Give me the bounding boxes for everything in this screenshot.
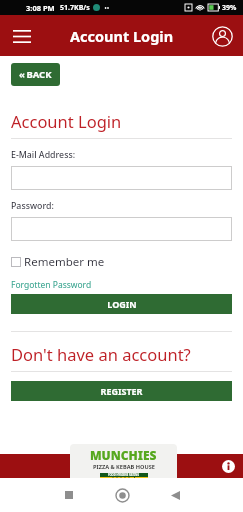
staticText: Password:	[11, 200, 54, 212]
button[interactable]: REGISTER	[11, 381, 232, 401]
staticText: REGISTER	[100, 385, 143, 397]
staticText: Account Login	[11, 110, 122, 132]
button[interactable]: Forgotten Password	[11, 279, 92, 291]
staticText: 3:08 PM	[26, 3, 55, 13]
button[interactable]: Remember me	[11, 254, 105, 270]
staticText: Forgotten Password	[11, 279, 92, 291]
button[interactable]: Open navigation menu	[6, 20, 38, 52]
staticText: 39%	[222, 3, 237, 13]
staticText: FOOD HYGIENE RATING	[108, 473, 140, 477]
staticText: E-Mail Address:	[11, 149, 76, 161]
staticText: Account Login	[70, 26, 174, 46]
button[interactable]: « BACK	[11, 63, 60, 86]
staticText: 51.7KB/s	[60, 3, 90, 13]
button[interactable]: Ad information	[221, 459, 235, 473]
button[interactable]: Account	[207, 21, 237, 51]
staticText: Remember me	[24, 254, 105, 270]
button[interactable]: Home	[105, 478, 139, 512]
button[interactable]: Text field	[11, 166, 232, 190]
button[interactable]: Recent apps	[52, 478, 86, 512]
staticText: LOGIN	[107, 298, 137, 310]
button[interactable]: Back	[158, 478, 192, 512]
staticText: PIZZA & KEBAB HOUSE	[93, 463, 155, 471]
button[interactable]: Munchies Pizza & Kebab House advertiseme…	[70, 444, 177, 478]
staticText: Don't have an account?	[11, 343, 191, 365]
button[interactable]: Text field	[11, 217, 232, 241]
staticText: « BACK	[19, 68, 52, 81]
staticText: MUNCHIES	[90, 447, 157, 463]
button[interactable]: LOGIN	[11, 294, 232, 314]
